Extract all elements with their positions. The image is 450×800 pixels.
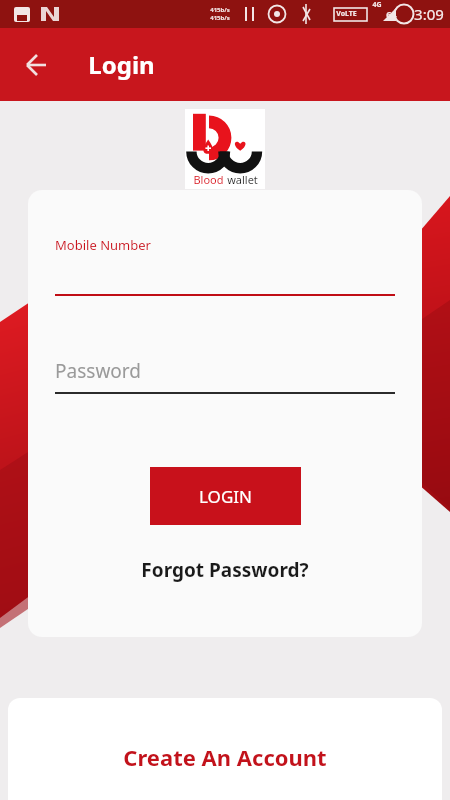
staticText: 415b/s xyxy=(210,14,230,22)
button[interactable]: Forgot Password? xyxy=(55,557,395,583)
staticText: Blood xyxy=(193,172,224,187)
staticText: Forgot Password? xyxy=(141,557,309,583)
button[interactable]: LOGIN xyxy=(150,467,301,525)
staticText: VoLTE xyxy=(336,9,357,19)
staticText: LOGIN xyxy=(199,485,252,508)
button[interactable]: Back xyxy=(12,41,60,89)
staticText: 3:09 xyxy=(414,4,444,24)
staticText: Password xyxy=(55,358,141,384)
staticText: Create An Account xyxy=(123,742,327,772)
staticText: 415b/s xyxy=(210,6,230,14)
staticText: wallet xyxy=(227,172,258,187)
staticText: Mobile Number xyxy=(55,236,151,254)
staticText: Login xyxy=(88,48,155,81)
button[interactable]: Create An Account xyxy=(8,698,442,800)
staticText: 4G xyxy=(372,0,382,10)
staticText: 64 xyxy=(386,8,397,20)
